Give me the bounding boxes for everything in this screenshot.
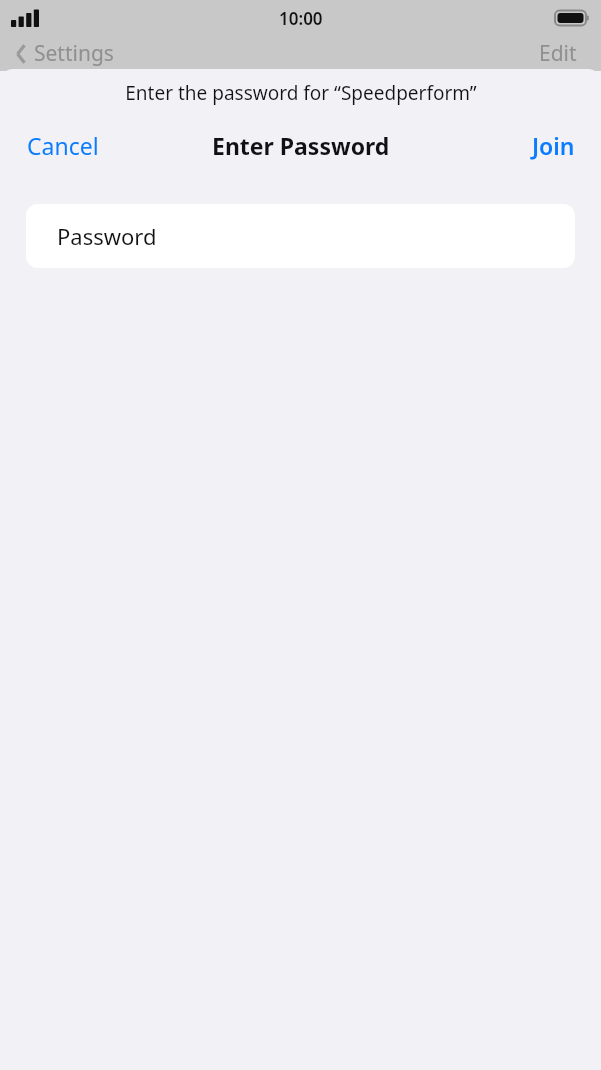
staticText: Password — [57, 221, 157, 251]
button[interactable]: Cancel — [0, 117, 126, 173]
staticText: Settings — [34, 39, 114, 68]
staticText: Enter the password for “Speedperform” — [125, 80, 477, 106]
staticText: Join — [532, 130, 575, 161]
staticText: Cancel — [27, 130, 99, 161]
staticText: 10:00 — [279, 7, 323, 30]
staticText: Edit — [539, 39, 577, 68]
staticText: Enter Password — [212, 130, 390, 161]
button[interactable]: Password — [26, 204, 575, 268]
button[interactable]: Join — [506, 117, 601, 173]
